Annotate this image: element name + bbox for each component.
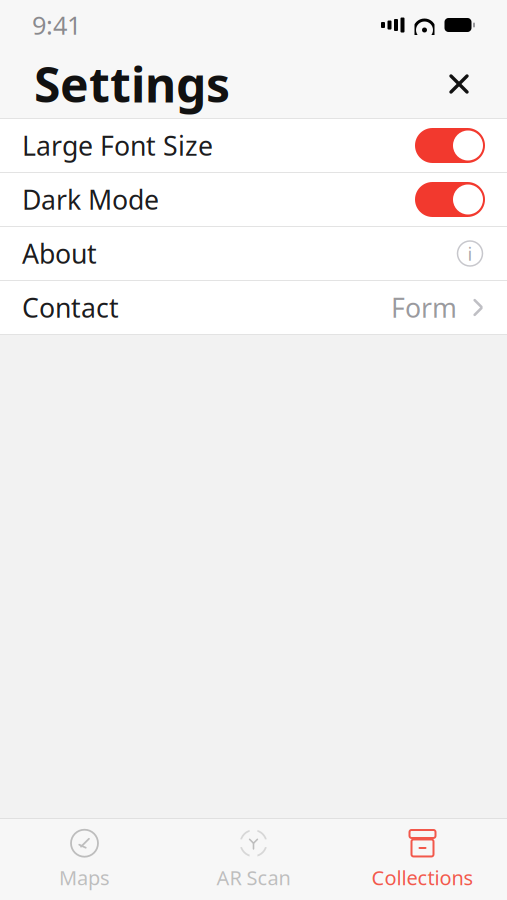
button[interactable]: Large Font Size <box>0 119 507 172</box>
staticText: Settings <box>34 52 230 116</box>
button[interactable]: Contact <box>0 281 507 334</box>
button[interactable]: Close <box>437 62 481 106</box>
staticText: About <box>22 236 97 271</box>
button[interactable]: AR Scan <box>169 820 338 899</box>
staticText: Contact <box>22 290 119 325</box>
staticText: Collections <box>371 864 473 891</box>
button[interactable]: Collections <box>338 820 507 899</box>
staticText: Maps <box>59 864 110 891</box>
staticText: i <box>467 241 472 266</box>
staticText: Dark Mode <box>22 182 159 217</box>
staticText: Large Font Size <box>22 128 213 163</box>
button[interactable]: About <box>0 227 507 280</box>
staticText: 9:41 <box>32 8 81 42</box>
staticText: AR Scan <box>216 864 290 891</box>
button[interactable]: Maps <box>0 820 169 899</box>
button[interactable]: Dark Mode <box>0 173 507 226</box>
staticText: Form <box>391 290 457 325</box>
